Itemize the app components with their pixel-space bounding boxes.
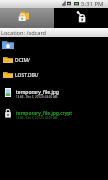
staticText: temporary_file.jpg.crypt — [16, 110, 73, 117]
staticText: 14 kB - Dec 3, 2012 6:34:26 AM — [16, 95, 58, 99]
button[interactable]: temporary_file.jpg.crypt — [0, 103, 108, 124]
button[interactable]: DCIM/ — [0, 52, 108, 68]
staticText: LOST.DIR/ — [15, 72, 39, 79]
button[interactable]: LOST.DIR/ — [0, 68, 108, 82]
staticText: DCIM/ — [15, 57, 30, 64]
button[interactable]: Go to root folder — [0, 37, 108, 52]
staticText: Location: /sdcard — [1, 29, 47, 37]
button[interactable]: temporary_file.jpg — [0, 82, 108, 103]
staticText: 14 kB - Dec 3, 2012 6:34:26 AM — [16, 116, 58, 120]
staticText: temporary_file.jpg — [16, 89, 59, 96]
staticText: 5:31 PM — [81, 0, 104, 8]
button[interactable]: Lock — [77, 11, 87, 23]
button[interactable]: Crypt folder — [18, 10, 29, 23]
